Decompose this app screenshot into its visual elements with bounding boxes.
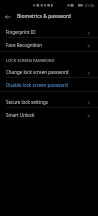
staticText: Fingerprint ID [6,29,36,35]
button[interactable]: Face Recognition [0,38,98,51]
button[interactable]: Back [3,11,13,21]
staticText: Face Recognition [6,42,42,48]
staticText: 21:36 [85,3,95,8]
button[interactable]: Disable lock screen password [0,78,98,91]
staticText: Secure lock settings [6,99,48,105]
button[interactable]: Fingerprint ID [0,25,98,38]
staticText: Change lock screen password [6,69,69,75]
staticText: Biometrics & password [17,13,71,20]
staticText: Smart Unlock [6,112,35,118]
staticText: LOCK SCREEN PASSWORD [6,58,55,63]
button[interactable]: Secure lock settings [0,95,98,108]
button[interactable]: Change lock screen password [0,65,98,78]
button[interactable]: Smart Unlock [0,108,98,121]
staticText: Disable lock screen password [6,82,68,88]
